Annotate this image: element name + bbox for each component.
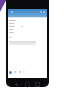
button[interactable]: Home [9, 71, 12, 74]
button[interactable] [8, 9, 47, 17]
button[interactable] [9, 41, 36, 45]
